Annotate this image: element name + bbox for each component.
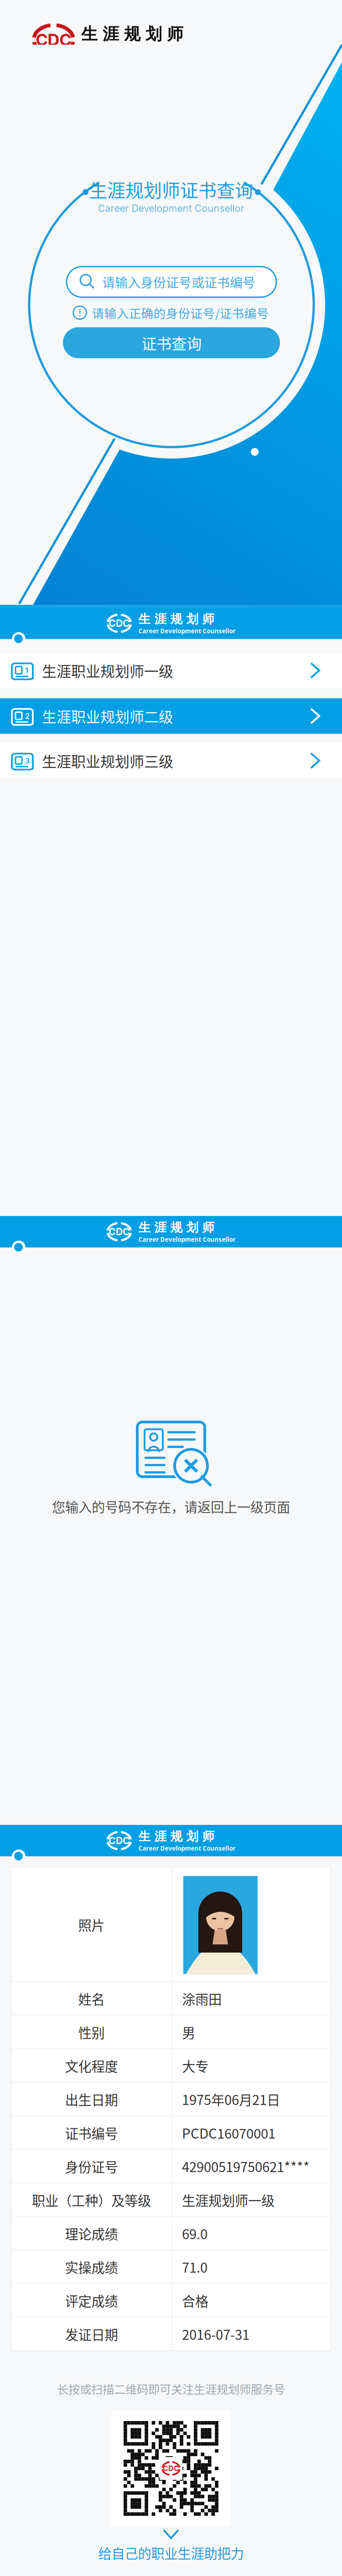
staticText: 1975年06月21日 <box>182 2090 280 2109</box>
button[interactable]: 3 <box>0 743 342 778</box>
staticText: 职业（工种）及等级 <box>32 2190 151 2210</box>
staticText: 证书编号 <box>65 2123 118 2142</box>
button[interactable]: 证书查询 <box>63 327 280 358</box>
staticText: 2016-07-31 <box>182 2324 249 2344</box>
staticText: 生 涯 规 划 师 <box>138 1829 215 1844</box>
staticText: 大专 <box>182 2056 208 2075</box>
staticText: 69.0 <box>182 2224 207 2243</box>
staticText: 照片 <box>78 1915 105 1934</box>
staticText: 身份证号 <box>65 2157 118 2176</box>
staticText: 请输入身份证号或证书编号 <box>102 273 255 291</box>
staticText: 姓名 <box>78 1989 105 2008</box>
staticText: 证书查询 <box>141 332 202 354</box>
staticText: 长按或扫描二维码即可关注生涯规划师服务号 <box>57 2380 285 2397</box>
staticText: 生 涯 规 划 师 <box>81 24 183 44</box>
staticText: 生涯职业规划师三级 <box>42 750 173 771</box>
staticText: 您输入的号码不存在，请返回上一级页面 <box>52 1497 290 1516</box>
staticText: CDC <box>109 617 130 629</box>
staticText: CDC <box>109 1226 130 1238</box>
staticText: 生涯职业规划师二级 <box>42 705 173 727</box>
staticText: 生涯规划师一级 <box>182 2190 275 2210</box>
staticText: 42900519750621**** <box>182 2157 310 2176</box>
staticText: Career Development Counsellor <box>138 627 236 635</box>
staticText: Career Development Counsellor <box>138 1844 236 1852</box>
staticText: 1 <box>25 666 28 675</box>
staticText: 合格 <box>182 2291 208 2310</box>
button[interactable]: 1 <box>0 653 342 688</box>
staticText: 涂雨田 <box>182 1989 222 2008</box>
staticText: 性别 <box>78 2022 105 2042</box>
staticText: 文化程度 <box>65 2056 118 2075</box>
staticText: 生涯职业规划师一级 <box>42 660 173 681</box>
staticText: Career Development Counsellor <box>98 202 244 214</box>
staticText: CDC <box>109 1835 130 1846</box>
staticText: 理论成绩 <box>65 2224 118 2243</box>
staticText: 生 涯 规 划 师 <box>138 611 215 627</box>
staticText: 请输入正确的身份证号/证书编号 <box>92 304 269 321</box>
button[interactable]: 给自己的职业生涯助把力 <box>0 2545 342 2561</box>
staticText: 生涯规划师证书查询 <box>89 176 253 202</box>
staticText: CDC <box>36 30 71 50</box>
staticText: 男 <box>182 2022 195 2042</box>
staticText: 3 <box>25 756 30 765</box>
staticText: 发证日期 <box>65 2324 118 2344</box>
staticText: 2 <box>25 712 30 721</box>
staticText: PCDC16070001 <box>182 2123 275 2142</box>
staticText: ! <box>78 307 81 319</box>
staticText: 给自己的职业生涯助把力 <box>98 2543 244 2562</box>
staticText: 实操成绩 <box>65 2257 118 2277</box>
staticText: 生 涯 规 划 师 <box>138 1220 215 1235</box>
staticText: CDC <box>163 2464 179 2473</box>
staticText: 出生日期 <box>65 2090 118 2109</box>
button[interactable]: 2 <box>0 698 342 734</box>
staticText: Career Development Counsellor <box>138 1235 236 1244</box>
staticText: 71.0 <box>182 2257 207 2277</box>
staticText: 评定成绩 <box>65 2291 118 2310</box>
